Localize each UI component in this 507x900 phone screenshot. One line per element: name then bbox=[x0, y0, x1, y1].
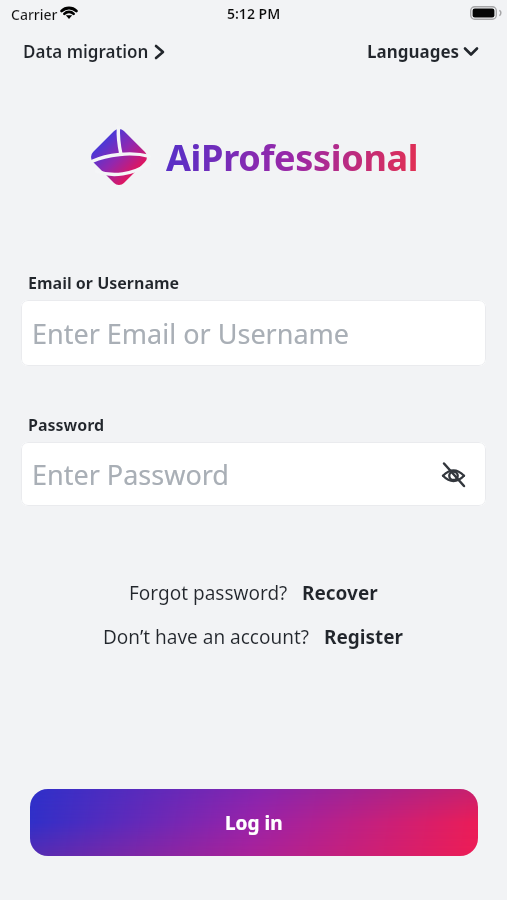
staticText: Enter Password bbox=[32, 456, 229, 493]
button[interactable]: Log in bbox=[30, 789, 478, 856]
button[interactable]: Enter Password bbox=[21, 442, 486, 506]
staticText: Log in bbox=[225, 810, 283, 836]
staticText: Languages bbox=[367, 40, 460, 63]
staticText: 5:12 PM bbox=[227, 4, 281, 23]
staticText: Password bbox=[28, 414, 105, 436]
staticText: AiProfessional bbox=[166, 133, 419, 182]
button[interactable]: Recover bbox=[302, 580, 378, 606]
button[interactable] bbox=[441, 462, 466, 487]
staticText: Email or Username bbox=[28, 272, 180, 294]
staticText: Forgot password? bbox=[129, 580, 288, 606]
staticText: Data migration bbox=[23, 40, 149, 63]
staticText: Enter Email or Username bbox=[32, 315, 350, 352]
button[interactable]: Languages bbox=[367, 40, 478, 63]
button[interactable]: Enter Email or Username bbox=[21, 300, 486, 366]
staticText: Don’t have an account? bbox=[103, 624, 310, 650]
staticText: Carrier bbox=[11, 5, 58, 24]
button[interactable]: Register bbox=[324, 624, 404, 650]
button[interactable]: Data migration bbox=[23, 40, 164, 63]
